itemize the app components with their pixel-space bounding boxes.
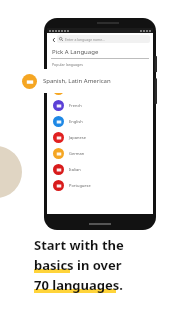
button[interactable]: Portuguese: [47, 177, 153, 193]
staticText: basics in over: [34, 256, 122, 274]
staticText: German: [69, 151, 85, 156]
staticText: Portuguese: [69, 183, 91, 188]
button[interactable]: Japanese: [47, 129, 153, 145]
staticText: French: [69, 103, 82, 108]
button[interactable]: English: [47, 113, 153, 129]
button[interactable]: German: [47, 145, 153, 161]
staticText: Popular languages: [52, 62, 83, 67]
button[interactable]: [47, 81, 153, 97]
staticText: English: [69, 119, 83, 124]
staticText: Pick A Language: [52, 48, 99, 56]
staticText: Italian: [69, 167, 81, 172]
button[interactable]: Italian: [47, 161, 153, 177]
staticText: 70 languages.: [34, 276, 123, 294]
staticText: Enter a language name...: [65, 37, 105, 42]
staticText: Spanish, Latin American: [43, 77, 111, 85]
staticText: Japanese: [69, 135, 86, 140]
button[interactable]: Enter a language name...: [57, 35, 150, 43]
staticText: Start with the: [34, 236, 124, 254]
button[interactable]: French: [47, 97, 153, 113]
button[interactable]: Back: [50, 36, 57, 43]
button[interactable]: Spanish, Latin American: [17, 69, 135, 93]
